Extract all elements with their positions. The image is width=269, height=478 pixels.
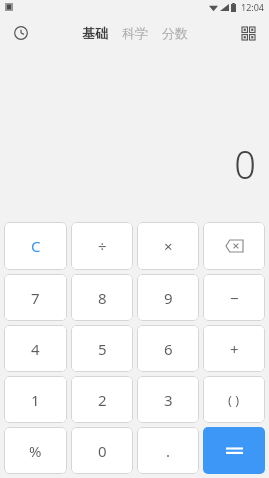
staticText: 3 bbox=[164, 390, 173, 410]
staticText: 8 bbox=[98, 288, 107, 308]
button[interactable]: 9 bbox=[137, 274, 199, 321]
button[interactable]: Equals bbox=[203, 427, 265, 474]
button[interactable]: % bbox=[4, 427, 67, 474]
staticText: + bbox=[230, 339, 239, 359]
button[interactable]: 2 bbox=[71, 376, 133, 423]
staticText: × bbox=[164, 236, 173, 256]
button[interactable]: More tools bbox=[234, 19, 262, 47]
staticText: 科学 bbox=[122, 25, 148, 41]
staticText: 0 bbox=[98, 441, 107, 461]
staticText: C bbox=[31, 236, 41, 256]
button[interactable]: ( ) bbox=[203, 376, 265, 423]
staticText: 0 bbox=[234, 138, 256, 190]
staticText: − bbox=[230, 288, 239, 308]
button[interactable]: 科学 bbox=[117, 21, 153, 45]
staticText: . bbox=[166, 441, 171, 461]
button[interactable]: 基础 bbox=[77, 21, 113, 45]
button[interactable]: 6 bbox=[137, 325, 199, 372]
button[interactable]: 4 bbox=[4, 325, 67, 372]
staticText: 分数 bbox=[162, 25, 188, 41]
button[interactable]: 0 bbox=[71, 427, 133, 474]
button[interactable]: C bbox=[4, 222, 67, 270]
staticText: 5 bbox=[98, 339, 107, 359]
staticText: 2 bbox=[98, 390, 107, 410]
staticText: 7 bbox=[31, 288, 40, 308]
staticText: 基础 bbox=[82, 25, 108, 41]
button[interactable]: + bbox=[203, 325, 265, 372]
button[interactable]: History bbox=[7, 19, 35, 47]
staticText: 12:04 bbox=[241, 1, 265, 13]
staticText: 1 bbox=[31, 390, 40, 410]
staticText: 4 bbox=[31, 339, 40, 359]
button[interactable]: ÷ bbox=[71, 222, 133, 270]
button[interactable]: 1 bbox=[4, 376, 67, 423]
button[interactable]: 7 bbox=[4, 274, 67, 321]
staticText: % bbox=[29, 441, 42, 461]
button[interactable]: 8 bbox=[71, 274, 133, 321]
button[interactable]: 分数 bbox=[157, 21, 193, 45]
button[interactable]: 3 bbox=[137, 376, 199, 423]
staticText: ( ) bbox=[228, 391, 240, 409]
button[interactable]: − bbox=[203, 274, 265, 321]
staticText: 6 bbox=[164, 339, 173, 359]
button[interactable]: × bbox=[137, 222, 199, 270]
button[interactable]: 5 bbox=[71, 325, 133, 372]
button[interactable]: . bbox=[137, 427, 199, 474]
button[interactable]: Backspace bbox=[203, 222, 265, 270]
staticText: ÷ bbox=[98, 236, 107, 256]
staticText: 9 bbox=[164, 288, 173, 308]
